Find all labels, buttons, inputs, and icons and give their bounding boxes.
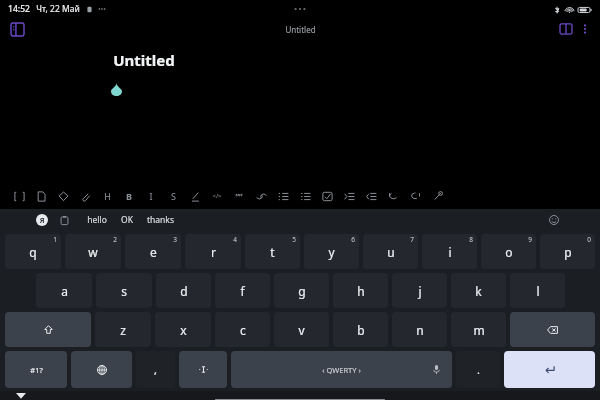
button[interactable]: l <box>510 273 565 308</box>
staticText: 7 <box>410 235 414 244</box>
staticText: 9 <box>528 235 532 244</box>
button[interactable]: Clipboard <box>57 213 71 227</box>
button[interactable]: c <box>215 312 270 347</box>
button[interactable]: w <box>65 234 121 269</box>
staticText: i <box>448 244 452 260</box>
button[interactable]: r <box>185 234 241 269</box>
staticText: w <box>88 244 98 260</box>
button[interactable]: Settings <box>426 185 448 207</box>
button[interactable]: o <box>481 234 536 269</box>
staticText: b <box>357 322 365 338</box>
button[interactable]: Reading mode <box>556 19 576 39</box>
button[interactable]: b <box>333 312 388 347</box>
button[interactable]: Redo <box>404 185 426 207</box>
button[interactable]: thanks <box>140 212 181 228</box>
button[interactable]: h <box>333 273 388 308</box>
button[interactable]: j <box>392 273 447 308</box>
staticText: u <box>387 244 395 260</box>
staticText: v <box>298 322 305 338</box>
button[interactable]: More options <box>576 20 594 38</box>
button[interactable]: Backspace <box>510 312 595 347</box>
button[interactable]: Toggle sidebar <box>8 20 26 38</box>
staticText: . <box>477 362 480 377</box>
button[interactable]: Period <box>456 351 500 388</box>
button[interactable]: hello <box>80 212 114 228</box>
staticText: g <box>298 283 306 299</box>
button[interactable]: New note <box>30 185 52 207</box>
button[interactable]: Enter <box>504 351 595 388</box>
button[interactable]: Tag <box>52 185 74 207</box>
button[interactable]: Keyboard settings <box>36 214 48 226</box>
button[interactable]: Hide keyboard <box>12 391 30 400</box>
button[interactable]: Bullet list <box>272 185 294 207</box>
staticText: thanks <box>147 214 174 226</box>
button[interactable]: f <box>215 273 270 308</box>
button[interactable]: q <box>5 234 61 269</box>
button[interactable]: Space <box>231 351 452 388</box>
staticText: ”” <box>235 191 243 202</box>
button[interactable]: Cursor control <box>179 351 227 388</box>
staticText: o <box>505 244 513 260</box>
button[interactable]: Emoji <box>546 212 562 228</box>
staticText: q <box>29 244 37 260</box>
staticText: k <box>475 283 482 299</box>
button[interactable]: Numbered list <box>294 185 316 207</box>
button[interactable]: g <box>274 273 329 308</box>
staticText: c <box>240 322 246 338</box>
button[interactable]: u <box>363 234 418 269</box>
button[interactable]: Italic <box>140 185 162 207</box>
button[interactable]: d <box>156 273 211 308</box>
staticText: e <box>150 244 157 260</box>
button[interactable]: Indent <box>338 185 360 207</box>
staticText: Я <box>39 215 45 225</box>
button[interactable]: Highlight <box>184 185 206 207</box>
button[interactable]: OK <box>114 212 140 228</box>
staticText: Чт, 22 Май <box>36 3 80 15</box>
button[interactable]: s <box>96 273 152 308</box>
staticText: j <box>418 283 422 299</box>
staticText: hello <box>87 214 107 226</box>
button[interactable]: Link <box>250 185 272 207</box>
staticText: 5 <box>292 235 296 244</box>
button[interactable]: Brackets <box>8 185 30 207</box>
staticText: 6 <box>351 235 355 244</box>
staticText: 0 <box>587 235 591 244</box>
button[interactable]: Strikethrough <box>162 185 184 207</box>
staticText: 14:52 <box>8 3 30 15</box>
button[interactable]: y <box>304 234 359 269</box>
button[interactable]: Attach <box>74 185 96 207</box>
staticText: 3 <box>173 235 177 244</box>
button[interactable]: t <box>245 234 300 269</box>
staticText: S <box>171 190 176 202</box>
button[interactable]: k <box>451 273 506 308</box>
button[interactable]: Heading <box>96 185 118 207</box>
staticText: ‹ QWERTY › <box>322 365 361 375</box>
button[interactable]: Quote <box>228 185 250 207</box>
button[interactable]: z <box>95 312 151 347</box>
button[interactable]: Bold <box>118 185 140 207</box>
button[interactable]: Change language <box>71 351 132 388</box>
button[interactable]: n <box>392 312 447 347</box>
staticText: 1 <box>53 235 57 244</box>
button[interactable]: x <box>155 312 211 347</box>
button[interactable]: Code <box>206 185 228 207</box>
staticText: H <box>104 190 111 202</box>
staticText: s <box>121 283 127 299</box>
button[interactable]: Undo <box>382 185 404 207</box>
staticText: d <box>180 283 188 299</box>
button[interactable]: #1? <box>5 351 67 388</box>
button[interactable]: Outdent <box>360 185 382 207</box>
button[interactable]: v <box>274 312 329 347</box>
button[interactable]: a <box>36 273 92 308</box>
staticText: n <box>416 322 424 338</box>
button[interactable]: m <box>451 312 506 347</box>
button[interactable]: p <box>540 234 595 269</box>
button[interactable]: Checklist <box>316 185 338 207</box>
button[interactable]: Comma <box>136 351 175 388</box>
staticText: 4 <box>233 235 237 244</box>
button[interactable]: Shift <box>5 312 91 347</box>
staticText: z <box>120 322 126 338</box>
button[interactable]: e <box>125 234 181 269</box>
button[interactable]: i <box>422 234 477 269</box>
staticText: , <box>154 362 157 377</box>
